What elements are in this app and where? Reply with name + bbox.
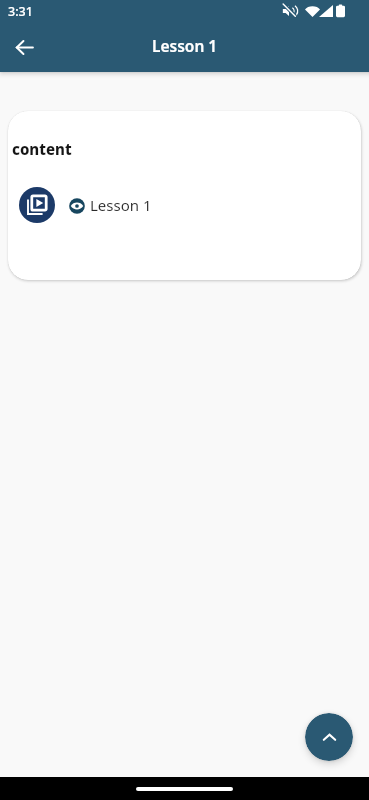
staticText: Lesson 1 (90, 195, 152, 215)
button[interactable]: Scroll to top (305, 713, 353, 761)
staticText: content (12, 139, 72, 159)
button[interactable]: Back (4, 27, 44, 67)
staticText: Lesson 1 (152, 35, 218, 56)
button[interactable]: Lesson 1 (8, 187, 361, 223)
staticText: 3:31 (8, 3, 33, 20)
